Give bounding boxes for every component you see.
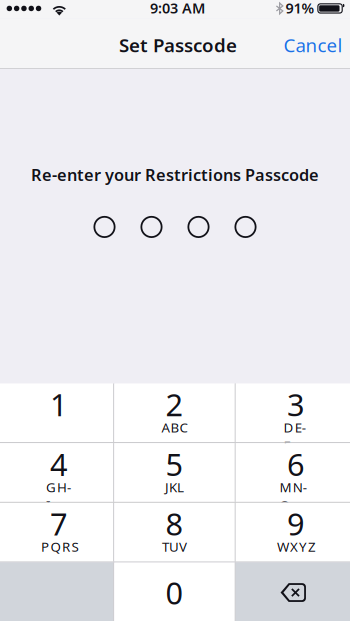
- staticText: ABC: [161, 418, 187, 436]
- staticText: 4: [50, 443, 68, 485]
- button[interactable]: Delete: [236, 562, 350, 621]
- staticText: 7: [50, 503, 68, 545]
- button[interactable]: 4: [0, 443, 113, 502]
- staticText: WXYZ: [277, 538, 316, 556]
- button[interactable]: 5: [114, 443, 235, 502]
- button[interactable]: 1: [0, 383, 113, 442]
- button[interactable]: 6: [236, 443, 350, 502]
- staticText: Re-enter your Restrictions Passcode: [31, 163, 319, 186]
- button[interactable]: 2: [114, 383, 235, 442]
- staticText: JKL: [165, 478, 184, 496]
- button[interactable]: 9: [236, 503, 350, 562]
- staticText: 9:03 AM: [150, 0, 205, 18]
- staticText: 3: [287, 383, 305, 425]
- staticText: PQRS: [41, 538, 78, 556]
- staticText: 6: [287, 443, 305, 485]
- staticText: MNO: [279, 478, 314, 496]
- button[interactable]: 7: [0, 503, 113, 562]
- staticText: 5: [165, 443, 183, 485]
- staticText: GHI: [46, 478, 73, 496]
- staticText: 8: [165, 503, 183, 545]
- staticText: 9: [287, 503, 305, 545]
- staticText: 0: [165, 572, 183, 613]
- button[interactable]: Cancel: [271, 21, 350, 65]
- staticText: 91%: [285, 0, 314, 18]
- button[interactable]: 3: [236, 383, 350, 442]
- staticText: Cancel: [283, 32, 342, 58]
- staticText: 2: [165, 383, 183, 425]
- button[interactable]: 8: [114, 503, 235, 562]
- staticText: TUV: [162, 538, 187, 556]
- staticText: DEF: [283, 418, 310, 436]
- staticText: Set Passcode: [119, 32, 237, 58]
- button[interactable]: 0: [114, 562, 235, 621]
- staticText: 1: [50, 383, 68, 425]
